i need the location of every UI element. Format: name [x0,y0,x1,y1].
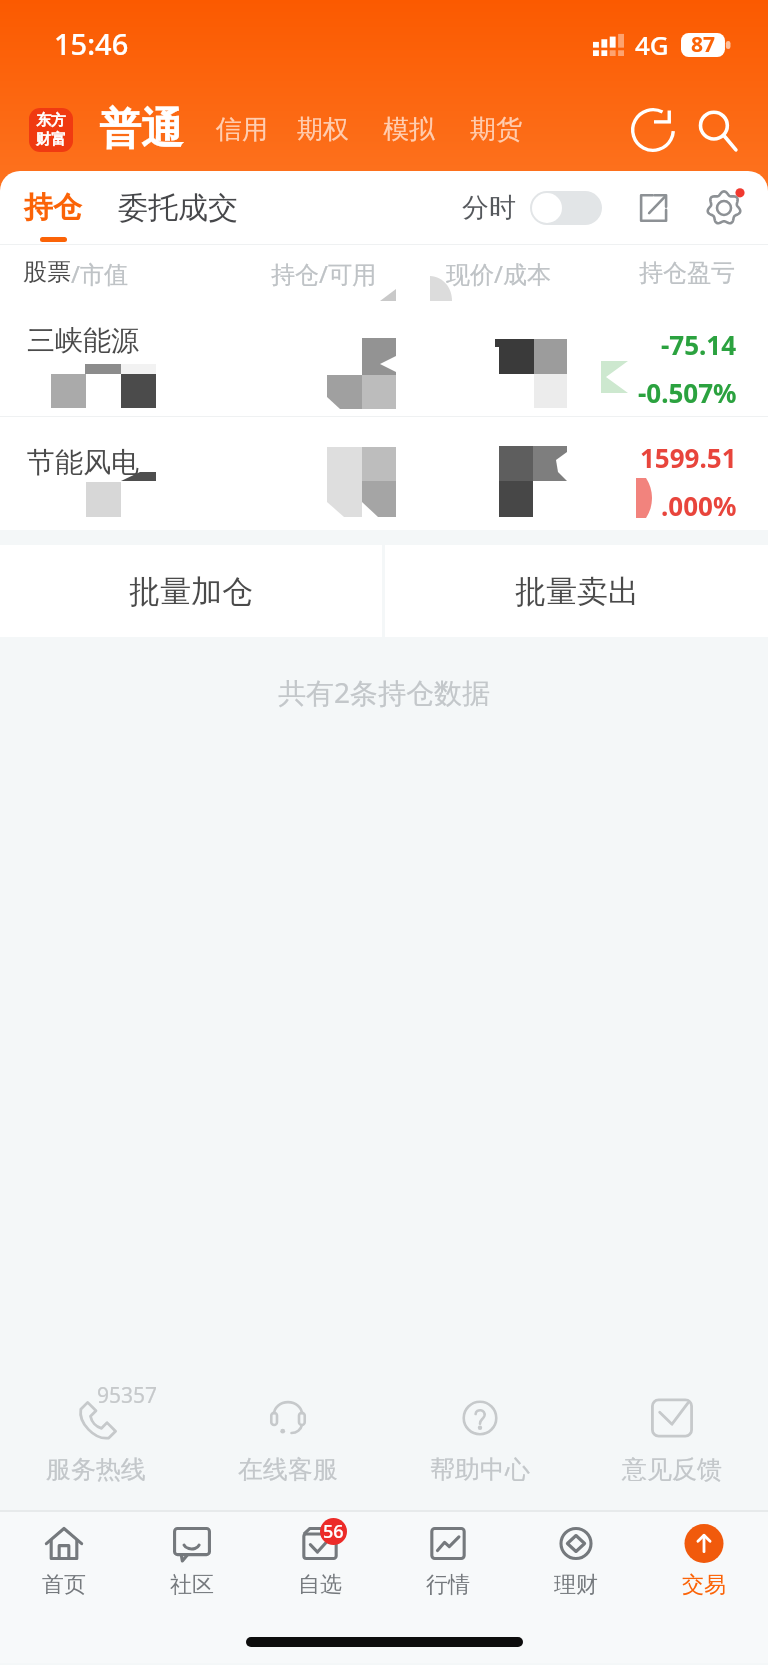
staticText: -0.507% [638,375,737,410]
staticText: 股票 [23,257,71,287]
button[interactable]: 东方财富 [29,108,73,152]
staticText: /市值 [71,257,128,290]
staticText: 服务热线 [46,1454,146,1485]
button[interactable]: 期权 [297,113,349,146]
staticText: 模拟 [383,113,435,146]
staticText: -75.14 [661,327,737,362]
staticText: 社区 [170,1571,214,1599]
staticText: 持仓盈亏 [639,258,735,288]
staticText: 持仓 [24,189,82,226]
staticText: 节能风电 [27,445,139,480]
staticText: 批量加仓 [129,572,253,611]
staticText: 期权 [297,113,349,146]
button[interactable]: 三峡能源 [0,301,768,416]
button[interactable]: 95357 [0,1390,192,1485]
button[interactable]: 批量卖出 [385,545,768,637]
button[interactable]: 全屏 [632,188,672,228]
button[interactable]: 在线客服 [192,1390,384,1485]
staticText: 95357 [97,1381,158,1410]
staticText: 4G [635,27,669,62]
button[interactable]: 意见反馈 [576,1390,768,1485]
staticText: 理财 [554,1571,598,1599]
staticText: 批量卖出 [515,572,639,611]
staticText: 1599.51 [640,440,737,475]
button[interactable]: 交易 [640,1512,768,1611]
staticText: 三峡能源 [27,323,139,358]
button[interactable]: 理财 [512,1512,640,1611]
staticText: 东方 [36,111,66,130]
staticText: 在线客服 [238,1454,338,1485]
button[interactable]: 信用 [216,113,268,146]
staticText: 15:46 [54,24,129,63]
staticText: 期货 [470,113,522,146]
staticText: 交易 [682,1571,726,1599]
button[interactable]: 帮助中心 [384,1390,576,1485]
staticText: 56 [323,1519,344,1544]
staticText: 持仓/可用 [271,257,376,290]
staticText: 首页 [42,1571,86,1599]
button[interactable]: 搜索 [690,103,744,157]
button[interactable]: 批量加仓 [0,545,382,637]
staticText: 87 [691,30,716,59]
staticText: 自选 [298,1571,342,1599]
button[interactable]: 首页 [0,1512,128,1611]
staticText: 财富 [36,130,66,149]
button[interactable]: 普通 [99,103,183,156]
button[interactable]: 期货 [470,113,522,146]
staticText: 委托成交 [118,189,238,227]
button[interactable]: 设置 [702,186,746,230]
staticText: 分时 [462,191,516,225]
button[interactable]: 刷新 [626,103,680,157]
button[interactable]: 行情 [384,1512,512,1611]
staticText: 帮助中心 [430,1454,530,1485]
button[interactable]: 分时 [462,191,516,225]
button[interactable]: 分时开关 [530,191,602,225]
button[interactable]: 持仓 [24,181,82,234]
staticText: 意见反馈 [622,1454,722,1485]
staticText: 普通 [99,103,183,156]
button[interactable]: 委托成交 [118,189,238,227]
button[interactable]: 模拟 [383,113,435,146]
staticText: 信用 [216,113,268,146]
button[interactable]: 节能风电 [0,417,768,530]
button[interactable]: 56 [256,1512,384,1611]
staticText: .000% [661,488,737,523]
staticText: 共有2条持仓数据 [278,673,491,711]
button[interactable]: 社区 [128,1512,256,1611]
staticText: 现价/成本 [446,257,551,290]
staticText: 行情 [426,1571,470,1599]
